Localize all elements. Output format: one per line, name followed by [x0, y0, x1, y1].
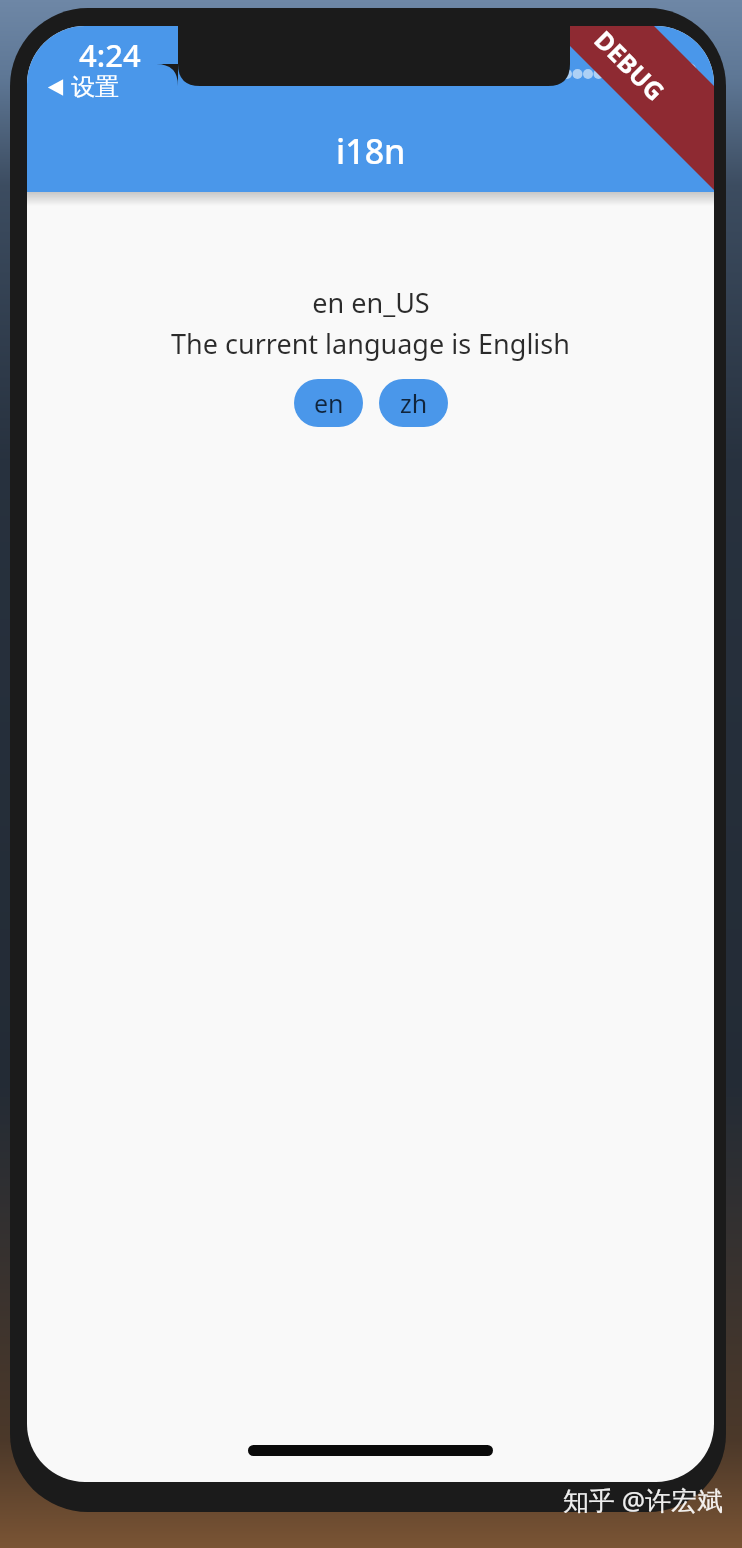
- staticText: i18n: [336, 128, 406, 174]
- staticText: en en_US: [312, 284, 430, 321]
- staticText: 知乎 @许宏斌: [563, 1482, 724, 1518]
- staticText: zh: [400, 386, 428, 420]
- staticText: The current language is English: [171, 325, 570, 362]
- button[interactable]: 设置: [39, 70, 127, 104]
- staticText: en: [314, 386, 344, 420]
- staticText: DEBUG: [588, 26, 672, 107]
- button[interactable]: en: [294, 379, 363, 427]
- button[interactable]: zh: [379, 379, 448, 427]
- staticText: 设置: [71, 72, 119, 102]
- staticText: 4:24: [79, 34, 141, 76]
